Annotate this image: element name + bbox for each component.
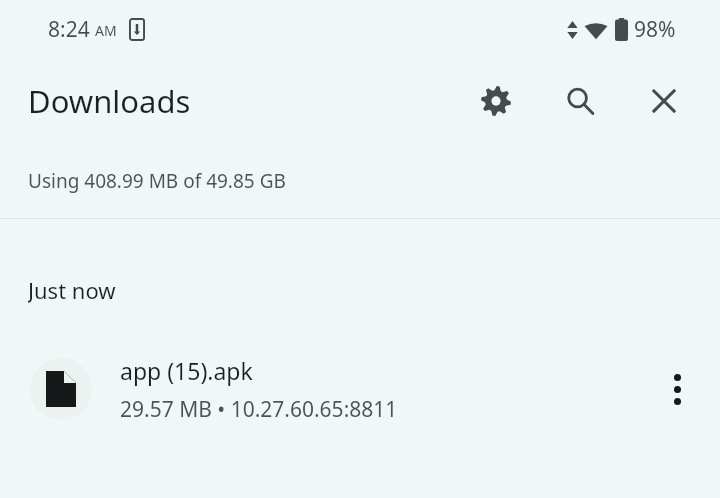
staticText: 98% (634, 15, 676, 44)
staticText: Using 408.99 MB of 49.85 GB (28, 168, 286, 194)
button[interactable]: Settings (468, 73, 524, 129)
staticText: 29.57 MB • 10.27.60.65:8811 (120, 395, 398, 424)
button[interactable]: app (15).apk (0, 341, 720, 437)
staticText: Downloads (28, 80, 191, 122)
staticText: 8:24 (48, 15, 90, 44)
button[interactable]: Close (636, 73, 692, 129)
staticText: app (15).apk (120, 355, 253, 386)
button[interactable]: More options (648, 360, 706, 418)
button[interactable]: Search (552, 73, 608, 129)
staticText: AM (95, 21, 117, 40)
staticText: Just now (28, 275, 116, 303)
